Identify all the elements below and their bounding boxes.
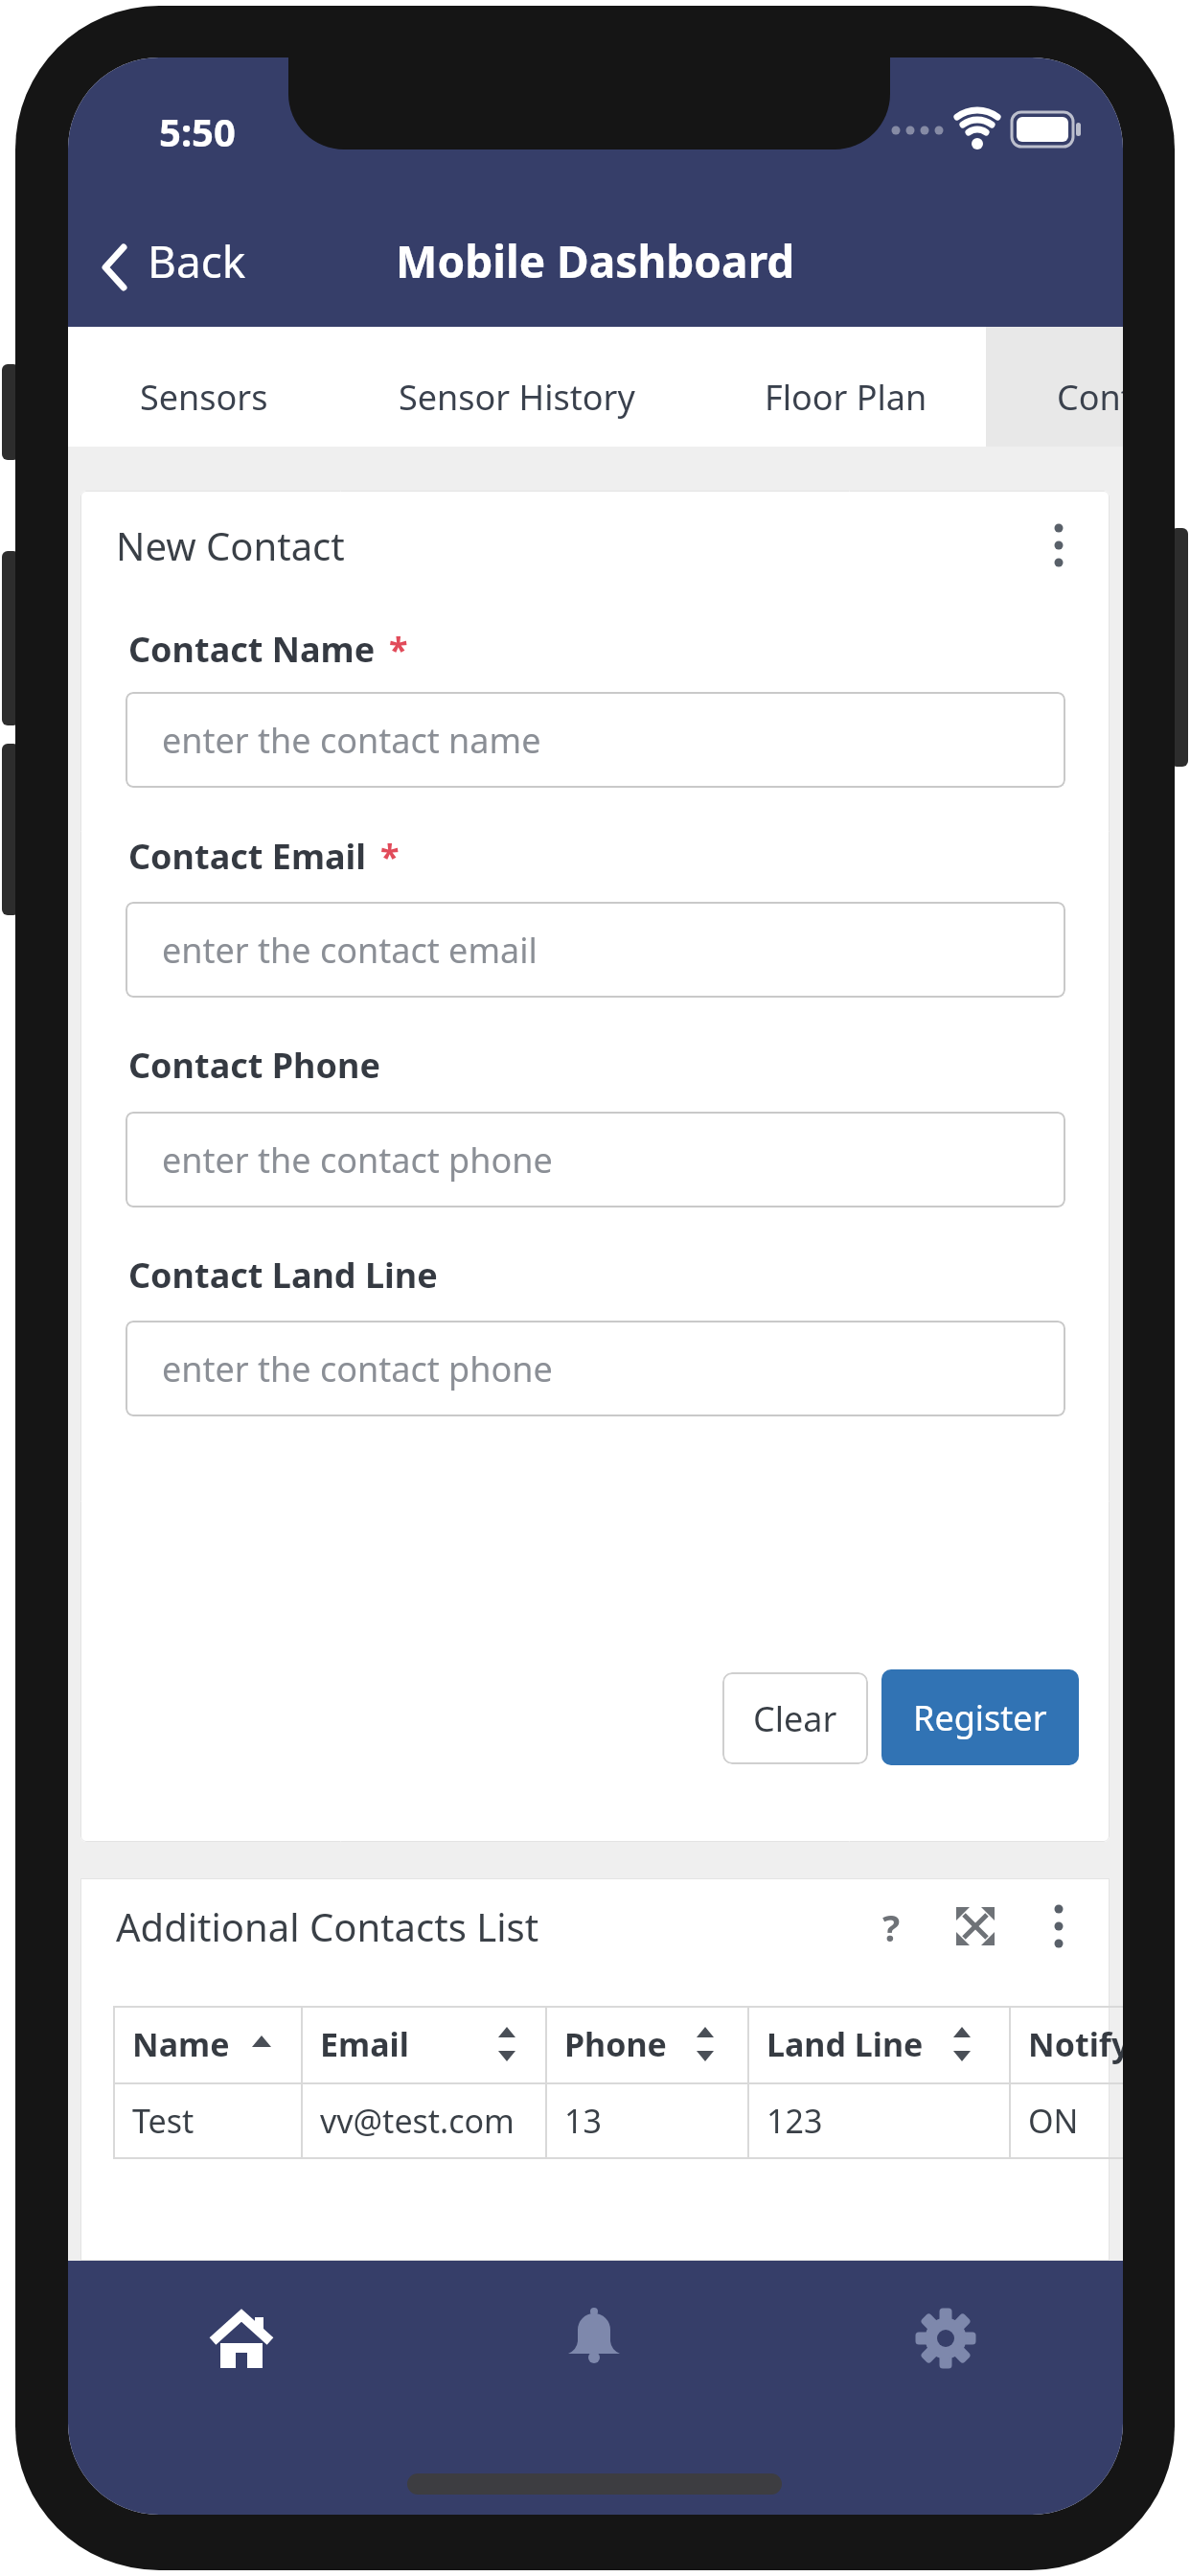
staticText: Name xyxy=(132,2022,230,2066)
staticText: 13 xyxy=(564,2099,602,2143)
button[interactable]: Contacts xyxy=(1057,344,1123,449)
staticText: Contact Email xyxy=(128,833,367,880)
staticText: 5:50 xyxy=(159,105,236,153)
staticText: Floor Plan xyxy=(765,374,927,421)
staticText: Phone xyxy=(564,2022,667,2066)
button[interactable] xyxy=(954,1905,996,1947)
button[interactable] xyxy=(174,2279,309,2398)
button[interactable] xyxy=(1040,1902,1078,1950)
staticText: * xyxy=(389,626,408,673)
button[interactable]: ? xyxy=(872,1902,910,1950)
staticText: New Contact xyxy=(116,519,345,571)
button[interactable]: enter the contact name xyxy=(126,692,1065,788)
staticText: ON xyxy=(1028,2099,1079,2143)
staticText: ? xyxy=(882,1902,901,1950)
button[interactable]: enter the contact email xyxy=(126,902,1065,998)
button[interactable]: Back xyxy=(87,230,298,291)
staticText: Additional Contacts List xyxy=(116,1900,539,1952)
button[interactable]: Sensor History xyxy=(373,344,660,449)
staticText: Clear xyxy=(753,1695,837,1742)
button[interactable]: Register xyxy=(881,1669,1079,1765)
button[interactable]: Floor Plan xyxy=(731,344,961,449)
button[interactable] xyxy=(879,2279,1013,2398)
staticText: 123 xyxy=(767,2099,823,2143)
staticText: Email xyxy=(320,2022,409,2066)
staticText: Contact Phone xyxy=(128,1042,380,1089)
staticText: Contact Name xyxy=(128,626,376,673)
staticText: enter the contact phone xyxy=(162,1137,553,1184)
button[interactable] xyxy=(527,2279,661,2398)
staticText: Test xyxy=(132,2099,195,2143)
staticText: enter the contact name xyxy=(162,717,541,764)
staticText: Back xyxy=(148,231,246,291)
button[interactable]: Clear xyxy=(722,1672,868,1764)
staticText: * xyxy=(380,833,400,880)
button[interactable]: enter the contact phone xyxy=(126,1321,1065,1416)
staticText: Register xyxy=(913,1694,1047,1741)
staticText: Sensor History xyxy=(399,374,635,421)
staticText: Land Line xyxy=(767,2022,924,2066)
staticText: Sensors xyxy=(140,374,268,421)
button[interactable] xyxy=(1040,521,1078,569)
staticText: Mobile Dashboard xyxy=(396,231,795,291)
staticText: enter the contact phone xyxy=(162,1345,553,1392)
staticText: enter the contact email xyxy=(162,927,538,974)
staticText: vv@test.com xyxy=(320,2099,515,2143)
button[interactable]: Sensors xyxy=(108,344,300,449)
button[interactable]: enter the contact phone xyxy=(126,1112,1065,1207)
staticText: Contact Land Line xyxy=(128,1252,438,1299)
staticText: Contacts xyxy=(1057,374,1123,421)
staticText: Notify xyxy=(1028,2022,1123,2066)
